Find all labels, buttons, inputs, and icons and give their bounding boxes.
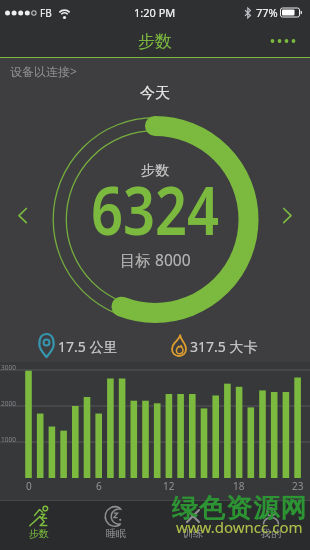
staticText: 17.5 公里 [58,337,118,356]
button[interactable] [269,37,297,45]
staticText: 睡眠 [106,527,126,540]
staticText: 我的 [261,527,281,540]
staticText: 训练 [183,527,203,540]
staticText: 2000 [1,399,16,408]
staticText: www.downcc.com [176,517,303,537]
staticText: FB [40,6,52,20]
staticText: 步数 [138,31,172,52]
staticText: 6324 [91,163,220,255]
staticText: 18 [233,479,245,493]
staticText: 23 [292,479,304,493]
staticText: 目标 8000 [120,249,191,270]
button[interactable]: 睡眠 [77,501,154,550]
button[interactable]: 我的 [232,501,310,550]
button[interactable]: 步数 [0,501,77,550]
staticText: 1000 [1,435,16,444]
staticText: 今天 [140,84,170,102]
staticText: 步数 [141,162,169,180]
staticText: 1:20 PM [134,5,176,20]
staticText: 6 [96,479,102,493]
staticText: 317.5 大卡 [190,337,258,356]
staticText: 设备以连接> [10,63,77,79]
staticText: 12 [163,479,175,493]
button[interactable]: 设备以连接> [0,58,310,84]
staticText: 3000 [1,363,16,372]
staticText: 77% [256,5,278,20]
staticText: 0 [26,479,32,493]
button[interactable]: 训练 [154,501,232,550]
staticText: 绿色资源网 [171,492,307,525]
staticText: 步数 [29,527,49,540]
